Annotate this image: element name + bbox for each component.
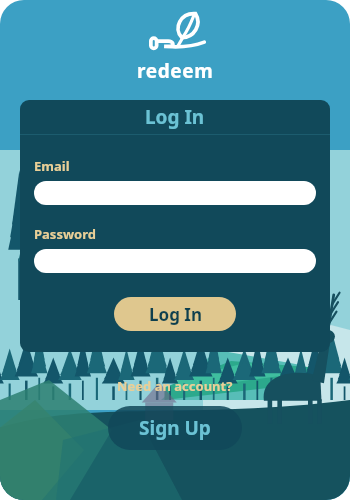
staticText: Need an account? [117, 377, 233, 395]
button[interactable]: Password input [34, 249, 316, 273]
other: Redeem logo [141, 9, 209, 55]
staticText: Sign Up [139, 415, 211, 441]
button[interactable]: Sign Up [108, 406, 242, 450]
staticText: Log In [145, 104, 205, 130]
staticText: redeem [137, 58, 214, 84]
staticText: Log In [149, 303, 202, 326]
button[interactable]: Log In [114, 297, 236, 331]
button[interactable]: Email input [34, 181, 316, 205]
staticText: Email [34, 157, 70, 175]
staticText: Password [34, 225, 96, 243]
